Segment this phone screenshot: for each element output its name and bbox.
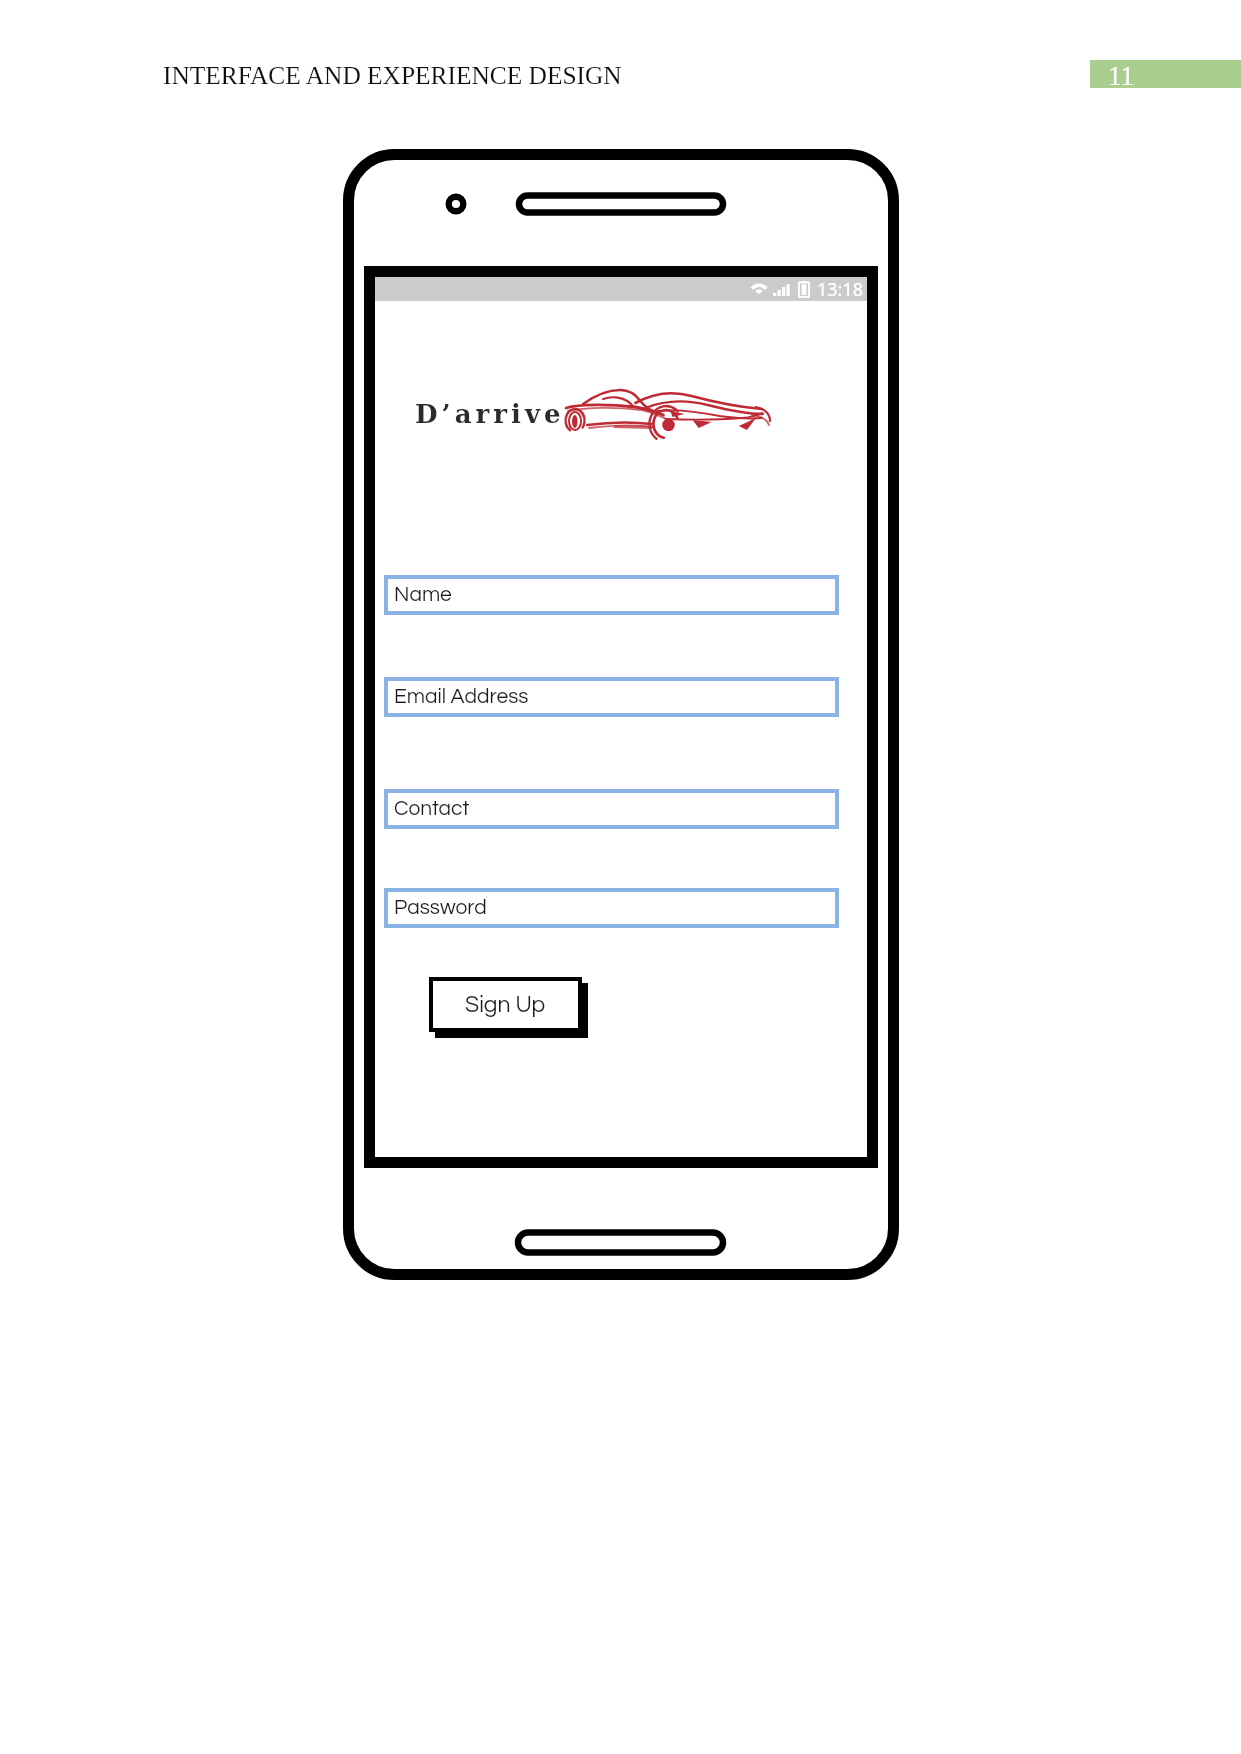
button[interactable]: Email Address bbox=[384, 677, 839, 717]
other: Wi-Fi bbox=[749, 281, 769, 297]
other: Signal bbox=[773, 282, 791, 296]
button[interactable]: Name bbox=[384, 575, 839, 615]
staticText: Email Address bbox=[394, 686, 529, 708]
staticText: INTERFACE AND EXPERIENCE DESIGN bbox=[163, 61, 622, 89]
button[interactable]: Sign Up bbox=[433, 981, 578, 1028]
staticText: Sign Up bbox=[465, 993, 546, 1017]
staticText: Contact bbox=[394, 798, 470, 820]
other: D'arrive car logo bbox=[565, 385, 772, 433]
staticText: Password bbox=[394, 897, 487, 919]
button[interactable]: Password bbox=[384, 888, 839, 928]
staticText: 11 bbox=[1108, 61, 1134, 89]
staticText: Name bbox=[394, 584, 452, 606]
other: Battery bbox=[799, 281, 809, 297]
staticText: 13:18 bbox=[817, 277, 864, 301]
button[interactable]: Contact bbox=[384, 789, 839, 829]
staticText: D’arrive bbox=[415, 399, 565, 430]
